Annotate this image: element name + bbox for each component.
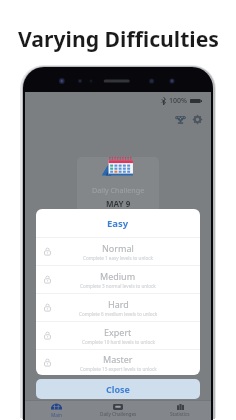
staticText: Complete 6 medium levels to unlock <box>79 311 158 317</box>
button[interactable]: Settings <box>189 111 205 127</box>
button[interactable]: Normal <box>36 237 200 265</box>
staticText: Complete 1 easy levels to unlock <box>83 255 153 261</box>
staticText: Normal <box>102 242 134 254</box>
button[interactable]: Expert <box>36 321 200 349</box>
button[interactable]: Hard <box>36 293 200 321</box>
staticText: Close <box>106 383 130 395</box>
button[interactable]: Close <box>36 379 200 399</box>
button[interactable]: Medium <box>36 265 200 293</box>
staticText: Daily Challenge <box>92 185 145 195</box>
staticText: Complete 15 expert levels to unlock <box>80 366 157 372</box>
staticText: Daily Challenges <box>100 411 137 417</box>
staticText: Medium <box>100 270 136 282</box>
button[interactable]: Leaderboard <box>172 111 188 127</box>
button[interactable]: Daily Challenges <box>87 401 149 420</box>
button[interactable]: Daily Challenge <box>77 157 159 219</box>
staticText: Complete 10 hard levels to unlock <box>82 339 155 345</box>
button[interactable]: Statistics <box>149 401 211 420</box>
staticText: Varying Difficulties <box>18 24 219 53</box>
staticText: Complete 3 normal levels to unlock <box>80 283 156 289</box>
staticText: Hard <box>108 298 129 310</box>
staticText: Main <box>51 412 62 418</box>
button[interactable]: Easy <box>36 209 200 237</box>
button[interactable]: Main <box>25 401 87 420</box>
button[interactable]: Master <box>36 349 200 375</box>
staticText: MAY 9 <box>106 198 131 209</box>
staticText: Expert <box>104 326 132 338</box>
staticText: 100% <box>169 96 187 106</box>
staticText: Master <box>103 353 133 365</box>
staticText: Statistics <box>170 411 190 417</box>
staticText: Easy <box>107 217 129 230</box>
